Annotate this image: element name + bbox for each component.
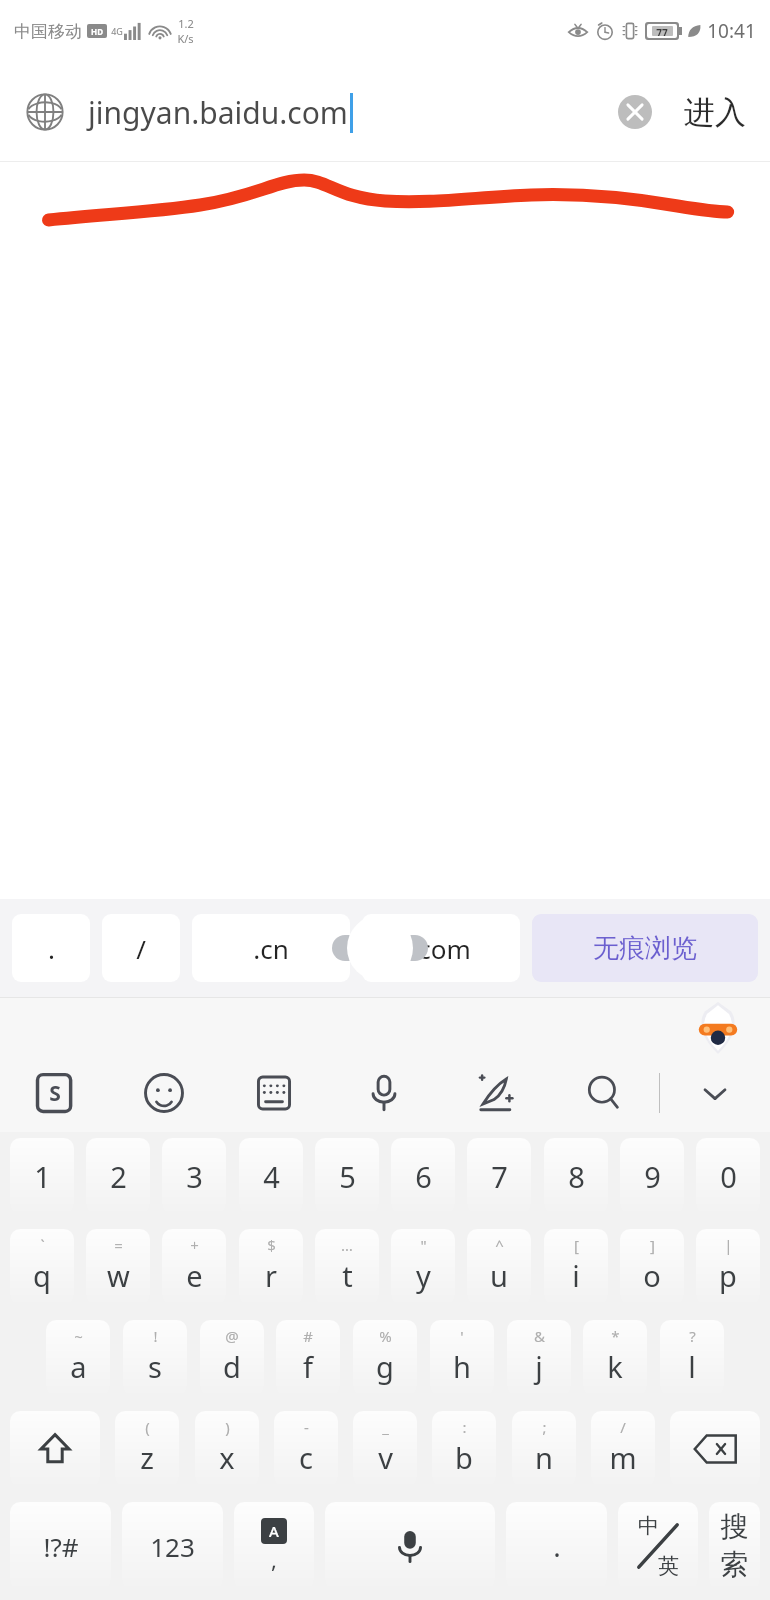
staticText: y [416,1256,431,1295]
staticText: @ [225,1326,239,1346]
button[interactable]: $ [239,1229,303,1305]
button[interactable]: .cn [192,914,350,982]
button[interactable]: Keyboard [219,1054,329,1132]
staticText: ^ [495,1235,504,1255]
button[interactable]: ; [512,1411,576,1487]
other: Site [24,91,66,133]
button[interactable]: _ [353,1411,417,1487]
button[interactable]: = [86,1229,150,1305]
button[interactable]: ? [660,1320,724,1396]
staticText: S [49,1079,61,1108]
staticText: p [719,1256,737,1295]
button[interactable]: 0 [696,1138,760,1214]
button[interactable]: 搜索 [709,1502,760,1590]
button[interactable]: ~ [46,1320,110,1396]
button[interactable]: % [353,1320,417,1396]
button[interactable]: 3 [162,1138,226,1214]
button[interactable]: Handwriting [439,1054,549,1132]
button[interactable]: Hide keyboard [660,1054,770,1132]
button[interactable]: Sogou [0,1054,109,1132]
button[interactable]: ! [123,1320,187,1396]
staticText: x [219,1438,235,1477]
staticText: . [48,931,55,966]
button[interactable]: Shift [10,1411,100,1487]
staticText: l [688,1347,696,1386]
staticText: 123 [150,1529,195,1564]
staticText: ) [225,1417,230,1437]
button[interactable]: / [591,1411,655,1487]
staticText: = [114,1235,123,1255]
button[interactable]: ` [10,1229,74,1305]
staticText: s [148,1347,162,1386]
staticText: 7 [491,1157,508,1196]
button[interactable]: Clear [612,89,658,135]
button[interactable]: & [507,1320,571,1396]
button[interactable]: Chinese English toggle [618,1502,698,1590]
staticText: A [269,1521,279,1541]
button[interactable]: ] [620,1229,684,1305]
button[interactable]: Emoji [109,1054,219,1132]
button[interactable]: 9 [620,1138,684,1214]
staticText: t [342,1256,353,1295]
button[interactable]: - [274,1411,338,1487]
staticText: - [304,1417,309,1437]
button[interactable]: ) [195,1411,259,1487]
staticText: 中国移动 [14,21,82,42]
staticText: g [376,1347,394,1386]
staticText: K/s [177,31,194,46]
staticText: | [724,1235,733,1255]
button[interactable]: 2 [86,1138,150,1214]
button[interactable]: !?# [10,1502,111,1590]
button[interactable]: 6 [391,1138,455,1214]
staticText: 搜索 [709,1509,760,1583]
button[interactable]: 7 [467,1138,531,1214]
button[interactable]: 1 [10,1138,74,1214]
staticText: & [534,1326,545,1346]
button[interactable]: / [102,914,180,982]
button[interactable]: 123 [122,1502,223,1590]
button[interactable]: 无痕浏览 [532,914,758,982]
staticText: 英 [658,1553,679,1579]
button[interactable]: … [315,1229,379,1305]
staticText: 0 [720,1157,737,1196]
button[interactable]: 4 [239,1138,303,1214]
button[interactable]: [ [544,1229,608,1305]
button[interactable]: ' [430,1320,494,1396]
staticText: 6 [415,1157,432,1196]
button[interactable]: 8 [544,1138,608,1214]
button[interactable]: Space, voice input [325,1502,495,1590]
staticText: !?# [43,1529,79,1564]
button[interactable]: Backspace [670,1411,760,1487]
staticText: q [33,1256,51,1295]
staticText: j [535,1347,543,1386]
button[interactable]: Search [549,1054,659,1132]
button[interactable]: : [432,1411,496,1487]
staticText: HD [91,26,103,37]
staticText: ! [153,1326,158,1346]
button[interactable]: . [12,914,90,982]
staticText: ~ [74,1326,83,1346]
button[interactable]: ^ [467,1229,531,1305]
button[interactable]: 5 [315,1138,379,1214]
button[interactable]: Voice input [329,1054,439,1132]
staticText: ` [40,1235,45,1255]
button[interactable]: .com [362,914,520,982]
staticText: " [420,1235,427,1255]
button[interactable]: " [391,1229,455,1305]
button[interactable]: . [506,1502,607,1590]
button[interactable]: * [583,1320,647,1396]
button[interactable]: 进入 [680,89,750,136]
button[interactable]: # [276,1320,340,1396]
button[interactable]: ( [115,1411,179,1487]
staticText: a [70,1347,87,1386]
button[interactable]: Shift lock comma [234,1502,314,1590]
button[interactable]: @ [200,1320,264,1396]
button[interactable]: + [162,1229,226,1305]
staticText: h [453,1347,471,1386]
staticText: 77 [656,26,668,36]
button[interactable]: | [696,1229,760,1305]
staticText: ( [145,1417,150,1437]
staticText: / [620,1417,626,1437]
staticText: c [299,1438,313,1477]
staticText: r [265,1256,277,1295]
